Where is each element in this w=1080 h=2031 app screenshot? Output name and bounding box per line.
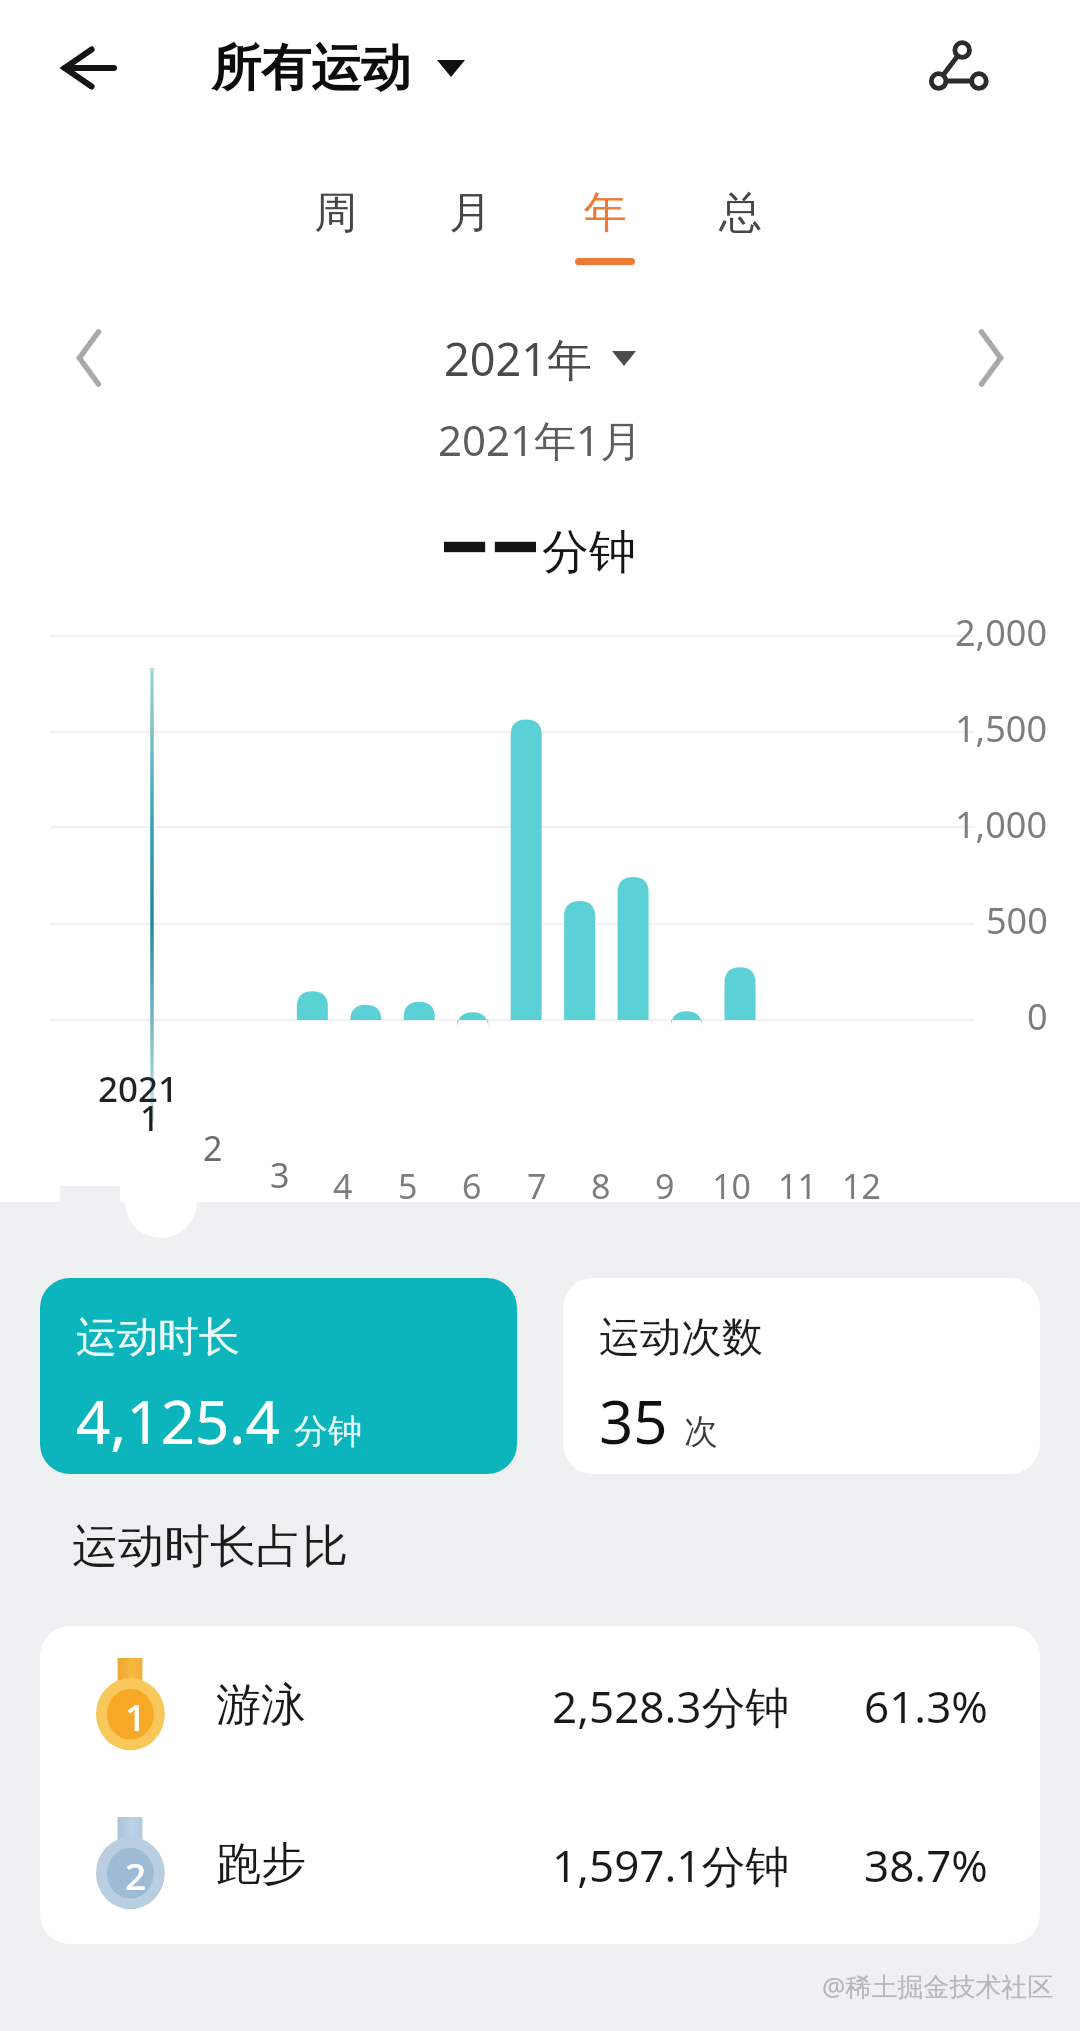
staticText: 分钟 [542,523,636,582]
staticText: 38.7% [864,1835,988,1895]
staticText: 1,597.1分钟 [552,1835,790,1895]
staticText: 分钟 [294,1410,362,1453]
button[interactable]: 所有运动 [205,22,471,114]
staticText: @稀土掘金技术社区 [822,1968,1054,2004]
button[interactable]: 2021年 [438,320,642,396]
staticText: 周 [314,186,357,240]
staticText: 所有运动 [211,37,411,100]
staticText: 月 [449,186,492,240]
staticText: 5 [398,1163,418,1209]
staticText: 2,528.3分钟 [552,1676,790,1736]
staticText: 1,500 [955,704,1048,753]
button[interactable]: Next year [948,316,1032,400]
staticText: 6 [462,1163,482,1209]
staticText: 2,000 [955,608,1048,657]
staticText: 2 [125,1850,147,1900]
staticText: 游泳 [216,1677,306,1734]
button[interactable]: 总 [673,186,807,294]
staticText: 1 [125,1691,147,1741]
staticText: 1 [140,1095,160,1141]
staticText: 3 [270,1152,290,1198]
staticText: 运动时长 [76,1312,240,1364]
button[interactable]: 1 [40,1626,1040,1785]
staticText: 10 [712,1163,751,1209]
staticText: 2021年 [444,328,592,389]
staticText: 7 [527,1163,547,1209]
staticText: 4 [333,1163,353,1209]
button[interactable]: Previous year [48,316,132,400]
staticText: 4,125.4 [76,1380,280,1462]
staticText: 跑步 [216,1836,306,1893]
staticText: 运动时长占比 [72,1518,348,1576]
staticText: 2 [203,1125,223,1171]
staticText: 9 [655,1163,675,1209]
staticText: 1,000 [955,800,1048,849]
staticText: 11 [778,1163,817,1209]
staticText: 61.3% [864,1676,988,1736]
button[interactable]: 运动次数 [563,1278,1040,1474]
button[interactable]: 年 [538,186,672,294]
button[interactable]: Back [42,24,130,112]
staticText: 总 [719,186,762,240]
button[interactable]: Share [908,20,1004,116]
staticText: 35 [599,1380,668,1462]
staticText: 500 [986,896,1048,945]
staticText: 运动次数 [599,1312,763,1364]
button[interactable]: 月 [403,186,537,294]
staticText: 8 [591,1163,611,1209]
staticText: 2021年1月 [438,411,643,468]
staticText: 12 [842,1163,881,1209]
staticText: 年 [584,186,627,240]
button[interactable]: 运动时长 [40,1278,517,1474]
staticText: 0 [1027,992,1048,1041]
staticText: 次 [684,1410,718,1453]
button[interactable]: 2 [40,1785,1040,1944]
staticText: 2021 [98,1065,179,1113]
button[interactable]: 周 [268,186,402,294]
